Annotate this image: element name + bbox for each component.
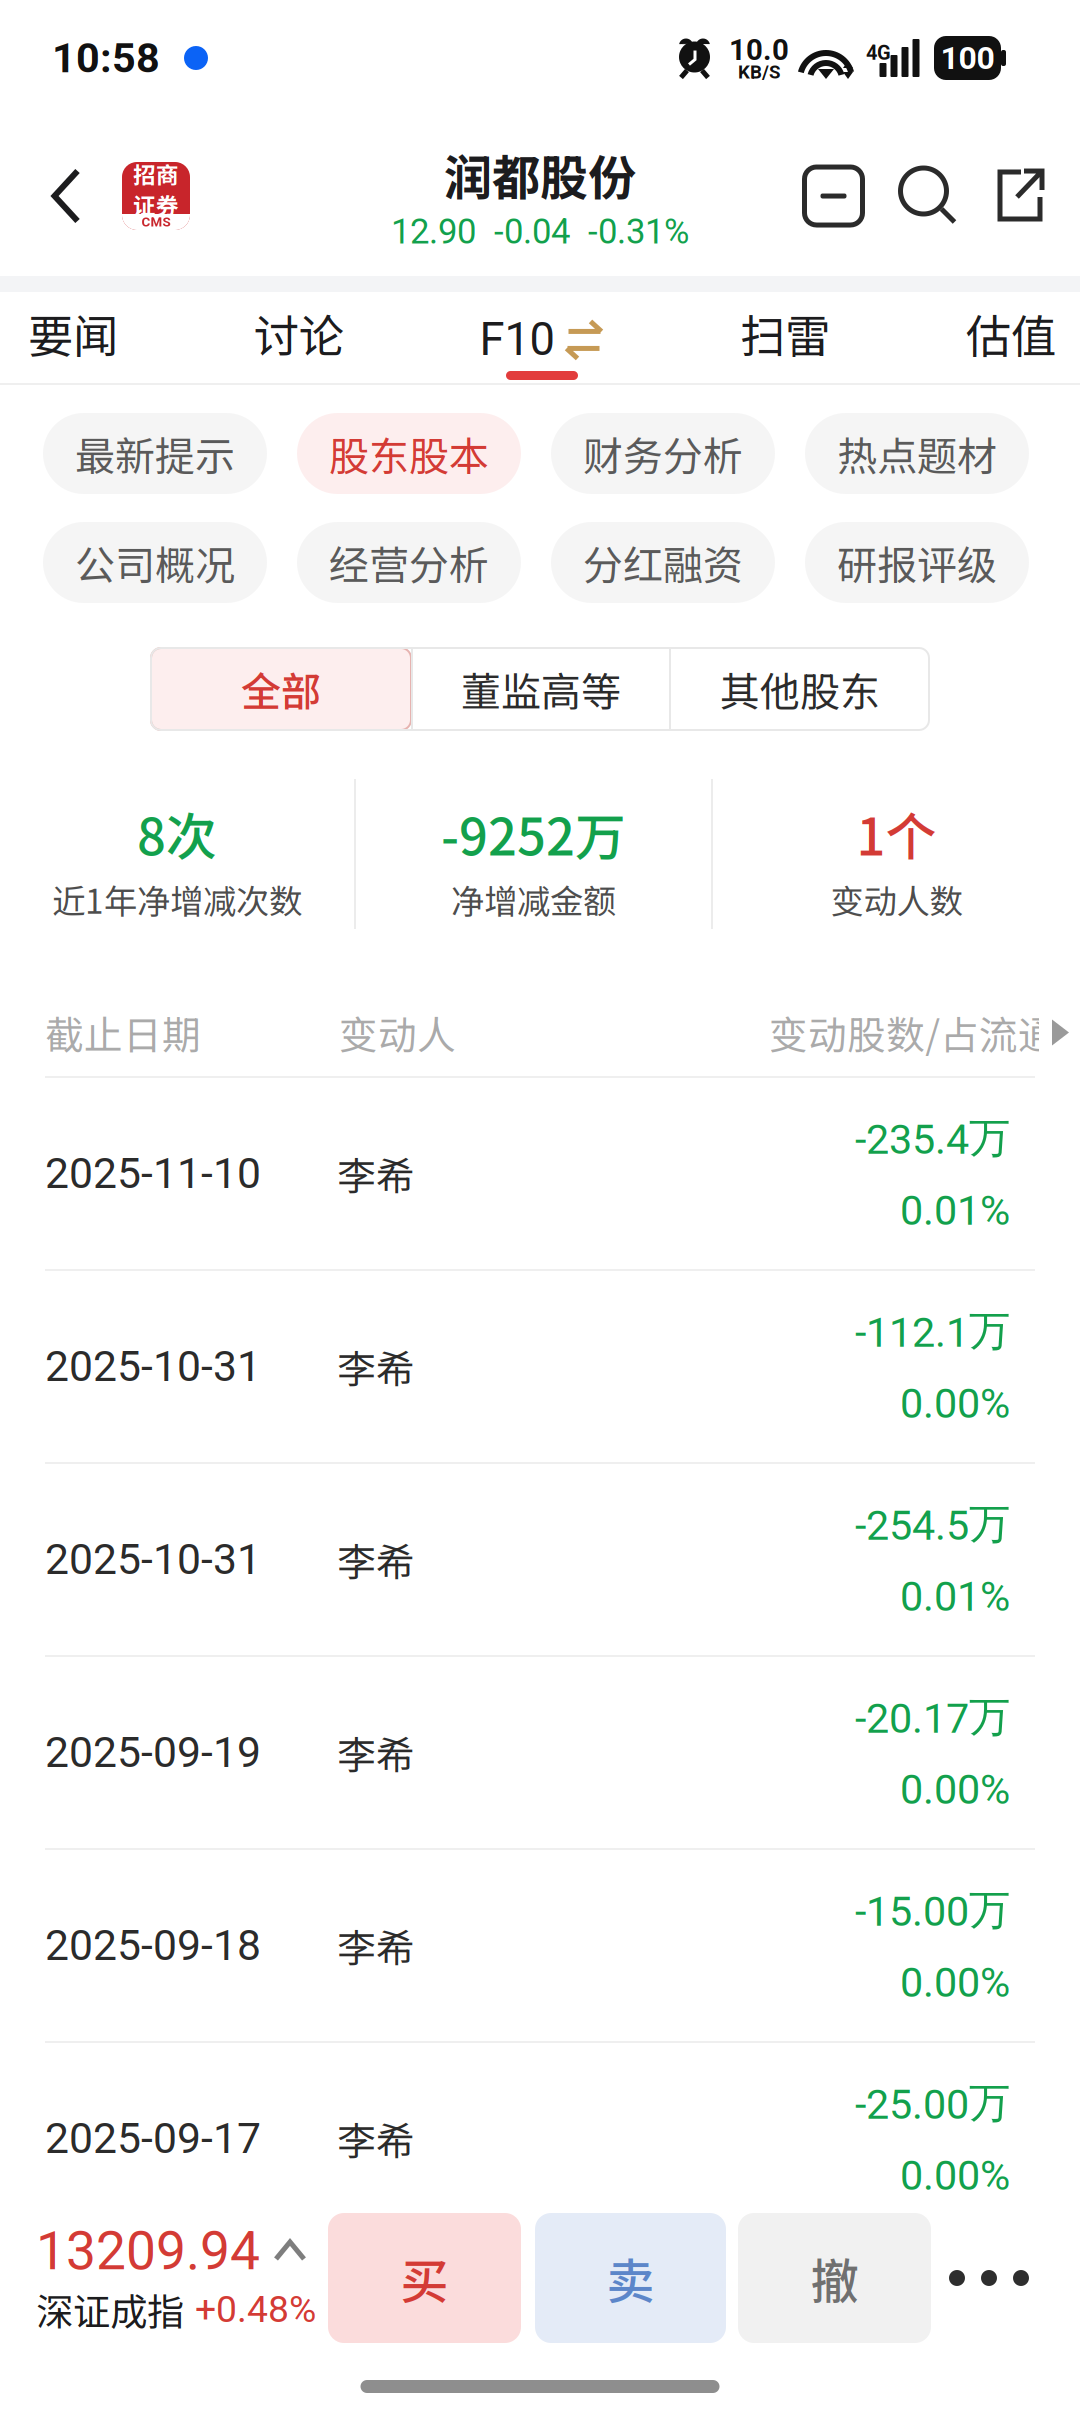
staticText: 2025-09-19 <box>45 1727 261 1777</box>
button[interactable]: 买 <box>328 2213 521 2343</box>
button[interactable]: 卖 <box>535 2213 726 2343</box>
button[interactable]: 股东股本 <box>297 413 521 494</box>
staticText: -235.4万 <box>855 1112 1010 1164</box>
staticText: 股东股本 <box>329 424 489 482</box>
staticText: 要闻 <box>28 300 118 366</box>
staticText: 0.00% <box>900 1958 1010 2007</box>
staticText: 扫雷 <box>740 300 830 366</box>
staticText: 李希 <box>337 1145 415 1201</box>
staticText: 经营分析 <box>329 533 489 591</box>
staticText: 8次 <box>137 797 217 870</box>
staticText: 截止日期 <box>45 1004 201 1060</box>
staticText: -112.1万 <box>855 1305 1010 1357</box>
button[interactable]: 分红融资 <box>551 522 775 603</box>
staticText: 近1年净增减次数 <box>52 875 302 923</box>
staticText: 变动股数/占流通 <box>769 1004 1057 1060</box>
staticText: 财务分析 <box>583 424 743 482</box>
button[interactable]: 招商证券 <box>103 116 209 276</box>
staticText: 2025-10-31 <box>45 1341 261 1391</box>
button[interactable]: 经营分析 <box>297 522 521 603</box>
staticText: -254.5万 <box>855 1498 1010 1550</box>
staticText: 估值 <box>966 300 1056 366</box>
staticText: 李希 <box>337 2110 415 2166</box>
staticText: 2025-11-10 <box>45 1148 261 1198</box>
staticText: 10:58 <box>52 34 160 82</box>
button[interactable]: 财务分析 <box>551 413 775 494</box>
button[interactable]: F10 <box>479 292 604 383</box>
staticText: -25.00万 <box>855 2077 1010 2129</box>
staticText: -9252万 <box>441 797 626 870</box>
button[interactable]: 估值 <box>966 292 1056 383</box>
staticText: 10.0 <box>729 33 789 67</box>
staticText: 2025-09-18 <box>45 1920 261 1970</box>
staticText: 全部 <box>241 660 321 718</box>
button[interactable]: 研报评级 <box>805 522 1029 603</box>
staticText: 0.00% <box>900 1765 1010 1814</box>
button[interactable]: 董监高等 <box>413 648 669 730</box>
staticText: 2025-10-31 <box>45 1534 261 1584</box>
staticText: 李希 <box>337 1338 415 1394</box>
staticText: 0.00% <box>900 1379 1010 1428</box>
button[interactable]: Minimize <box>786 116 881 276</box>
staticText: 0.01% <box>900 1572 1010 1621</box>
staticText: 公司概况 <box>75 533 235 591</box>
button[interactable]: More <box>931 2213 1047 2343</box>
staticText: 招商 <box>133 157 179 190</box>
staticText: 2025-09-17 <box>45 2113 261 2163</box>
staticText: KB/S <box>738 61 780 83</box>
button[interactable]: 要闻 <box>28 292 118 383</box>
staticText: 分红融资 <box>583 533 743 591</box>
staticText: 0.00% <box>900 2151 1010 2200</box>
staticText: 撤 <box>810 2243 858 2313</box>
staticText: F10 <box>479 313 554 366</box>
staticText: 净增减金额 <box>451 875 616 923</box>
staticText: 最新提示 <box>75 424 235 482</box>
staticText: -20.17万 <box>855 1691 1010 1743</box>
button[interactable]: 其他股东 <box>671 648 929 730</box>
staticText: 讨论 <box>254 300 344 366</box>
staticText: 100 <box>940 39 994 77</box>
button[interactable]: 最新提示 <box>43 413 267 494</box>
button[interactable]: 撤 <box>738 2213 931 2343</box>
staticText: 热点题材 <box>837 424 997 482</box>
button[interactable]: 13209.94 <box>36 2213 320 2343</box>
button[interactable]: Search <box>881 116 976 276</box>
staticText: 12.90 -0.04 -0.31% <box>391 211 689 252</box>
staticText: 13209.94 <box>36 2220 260 2282</box>
button[interactable]: Back <box>29 116 103 276</box>
staticText: +0.48% <box>195 2287 316 2331</box>
button[interactable]: 讨论 <box>254 292 344 383</box>
staticText: 变动人 <box>339 1004 456 1060</box>
staticText: 其他股东 <box>720 660 880 718</box>
staticText: 证券 <box>133 188 179 221</box>
staticText: 4G <box>866 41 891 65</box>
staticText: -15.00万 <box>855 1884 1010 1936</box>
staticText: 李希 <box>337 1917 415 1973</box>
staticText: 0.01% <box>900 1186 1010 1235</box>
staticText: 董监高等 <box>461 660 621 718</box>
staticText: 1个 <box>856 797 936 870</box>
button[interactable]: 热点题材 <box>805 413 1029 494</box>
button[interactable]: Share <box>976 116 1056 276</box>
staticText: CMS <box>141 214 170 230</box>
button[interactable]: 公司概况 <box>43 522 267 603</box>
staticText: 李希 <box>337 1724 415 1780</box>
staticText: 变动人数 <box>830 875 962 923</box>
staticText: 深证成指 <box>36 2282 184 2336</box>
staticText: 买 <box>400 2243 448 2313</box>
staticText: 卖 <box>606 2243 654 2313</box>
staticText: 研报评级 <box>837 533 997 591</box>
staticText: 润都股份 <box>444 140 636 209</box>
button[interactable]: 扫雷 <box>740 292 830 383</box>
staticText: 李希 <box>337 1531 415 1587</box>
button[interactable]: 全部 <box>151 648 411 730</box>
